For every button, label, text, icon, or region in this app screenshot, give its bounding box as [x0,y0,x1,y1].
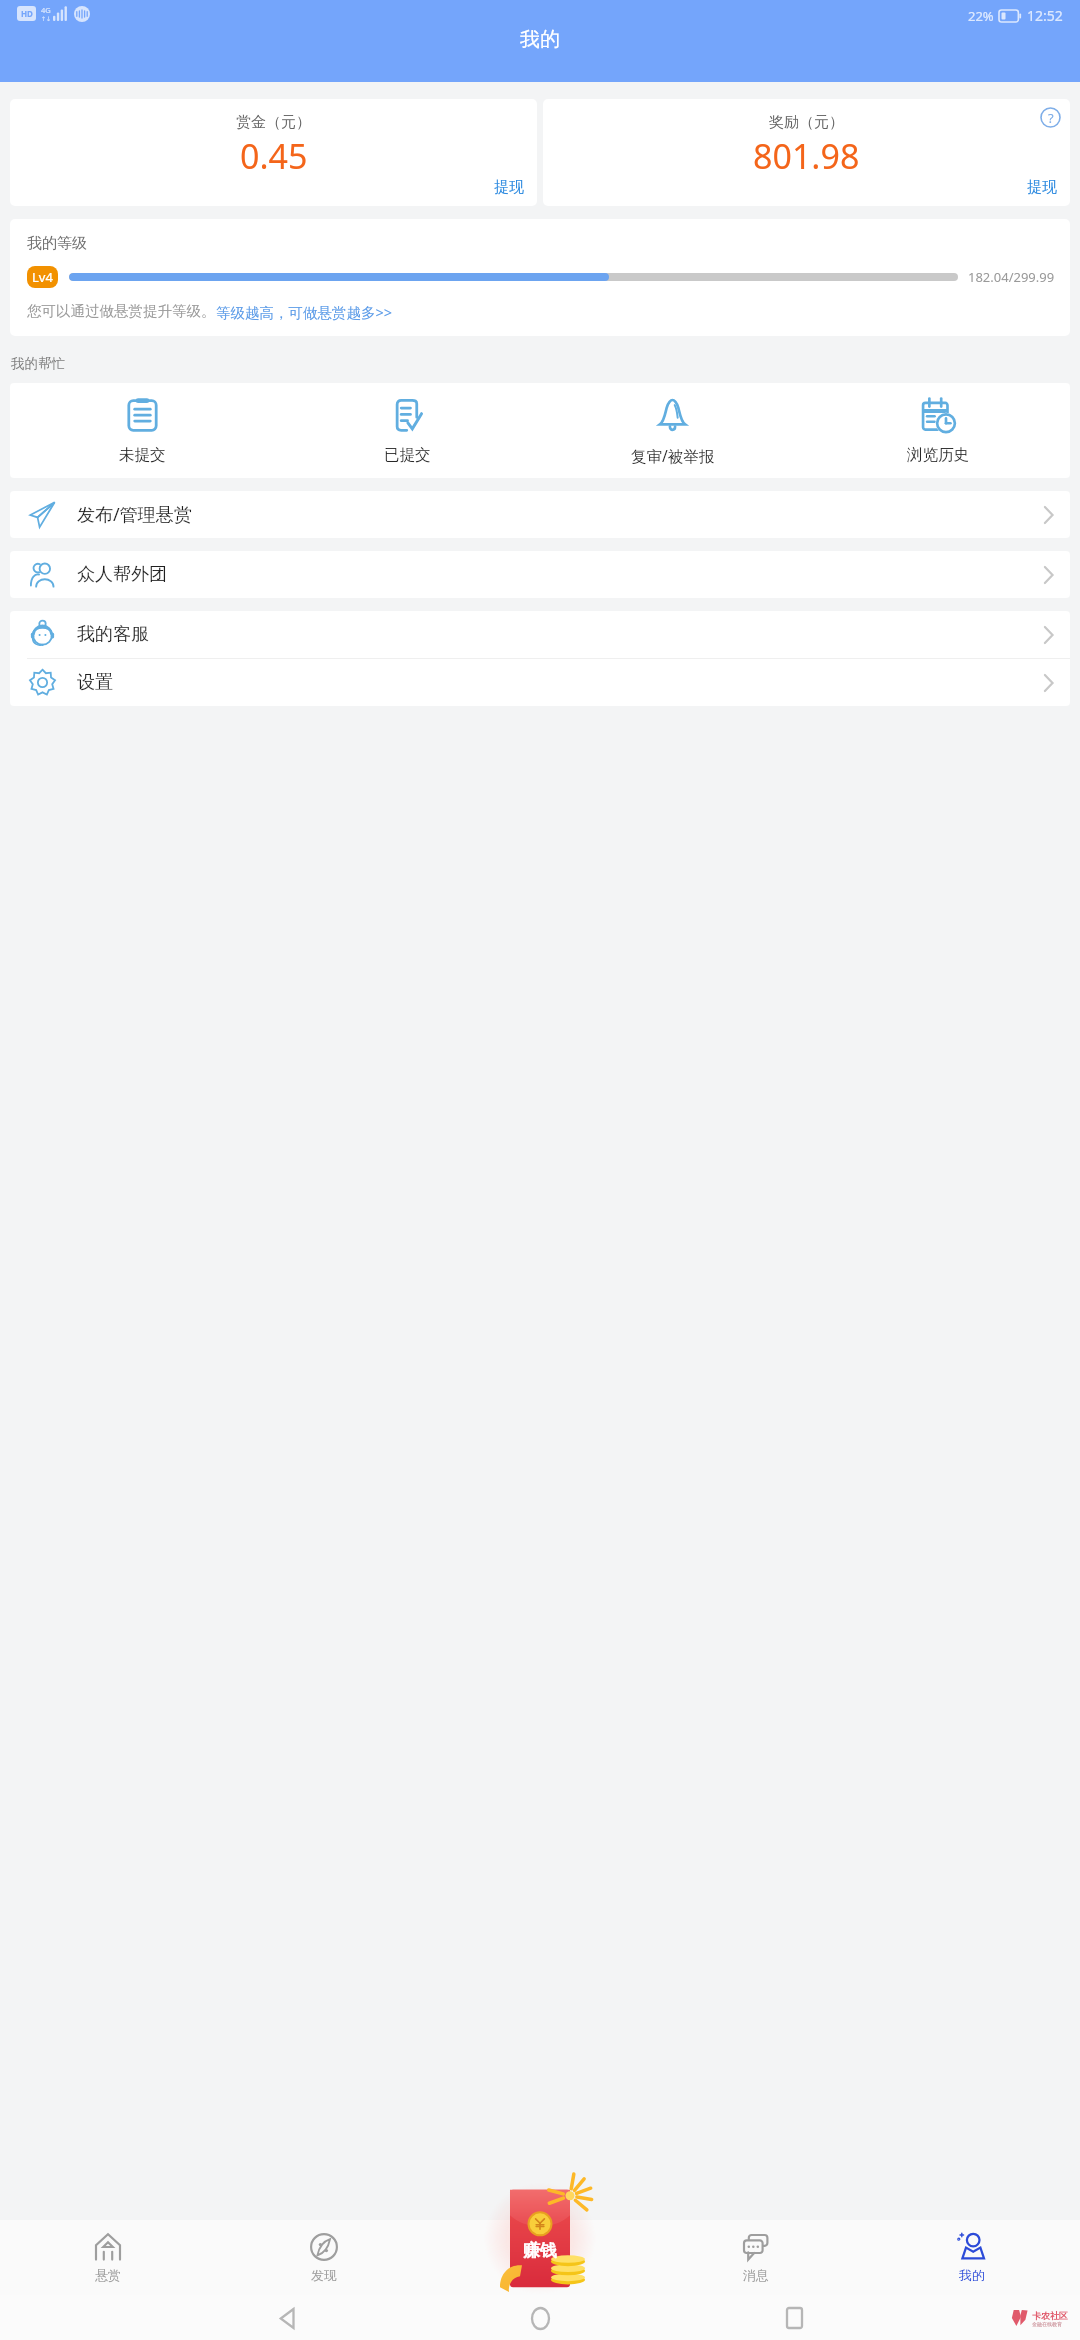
staticText: Lv4 [32,268,53,286]
button[interactable]: 已提交 [275,397,540,465]
button[interactable]: 提现 [494,178,524,197]
staticText: 奖励（元） [769,113,844,132]
staticText: 12:52 [1027,6,1063,25]
staticText: HD [21,8,33,19]
staticText: 我的客服 [77,623,149,646]
staticText: 悬赏 [95,2267,121,2283]
staticText: 浏览历史 [907,445,969,465]
staticText: 赏金（元） [236,113,311,132]
staticText: 我的 [520,27,560,52]
staticText: 我的 [959,2267,985,2283]
staticText: ? [1048,109,1054,127]
button[interactable]: 我的 [864,2220,1080,2295]
button[interactable]: 复审/被举报 [540,397,805,466]
button[interactable]: 众人帮外团 [10,551,1070,598]
staticText: 赚钱 [523,2240,557,2261]
staticText: 复审/被举报 [631,445,715,466]
button[interactable]: 赚钱 [490,2175,590,2297]
staticText: 您可以通过做悬赏提升等级。 [27,302,216,320]
staticText: 发现 [311,2267,337,2283]
staticText: 22% [968,7,994,25]
button[interactable]: 赚钱 [432,2220,648,2295]
button[interactable]: Home [525,2303,555,2333]
staticText: 发布/管理悬赏 [77,502,192,527]
staticText: 未提交 [119,445,166,465]
button[interactable]: 我的等级 [10,219,1070,336]
button[interactable]: 浏览历史 [805,397,1070,465]
staticText: ↑↓ [41,15,52,22]
button[interactable]: 悬赏 [0,2220,216,2295]
staticText: 182.04/299.99 [968,268,1055,286]
staticText: 我的帮忙 [11,355,65,372]
button[interactable]: 我的客服 [10,611,1070,658]
staticText: 我的等级 [27,234,87,253]
staticText: 消息 [743,2267,769,2283]
button[interactable]: 发现 [216,2220,432,2295]
button[interactable]: Recents [779,2303,809,2333]
staticText: 众人帮外团 [77,563,167,586]
staticText: 0.45 [240,133,308,179]
staticText: 金融在线教育 [1032,2321,1062,2327]
button[interactable]: 赏金（元） [10,99,537,206]
button[interactable]: 未提交 [10,397,275,465]
staticText: 4G [41,5,51,15]
staticText: 已提交 [384,445,431,465]
button[interactable]: Back [272,2303,302,2333]
staticText: 801.98 [753,133,860,179]
button[interactable]: 消息 [648,2220,864,2295]
button[interactable]: 发布/管理悬赏 [10,491,1070,538]
staticText: 卡农社区 [1032,2310,1068,2321]
button[interactable]: 等级越高，可做悬赏越多>> [216,302,393,322]
button[interactable]: 设置 [10,659,1070,706]
button[interactable]: 奖励（元） [543,99,1070,206]
staticText: 设置 [77,671,113,694]
button[interactable]: 提现 [1027,178,1057,197]
button[interactable]: 帮助 [1040,107,1061,128]
